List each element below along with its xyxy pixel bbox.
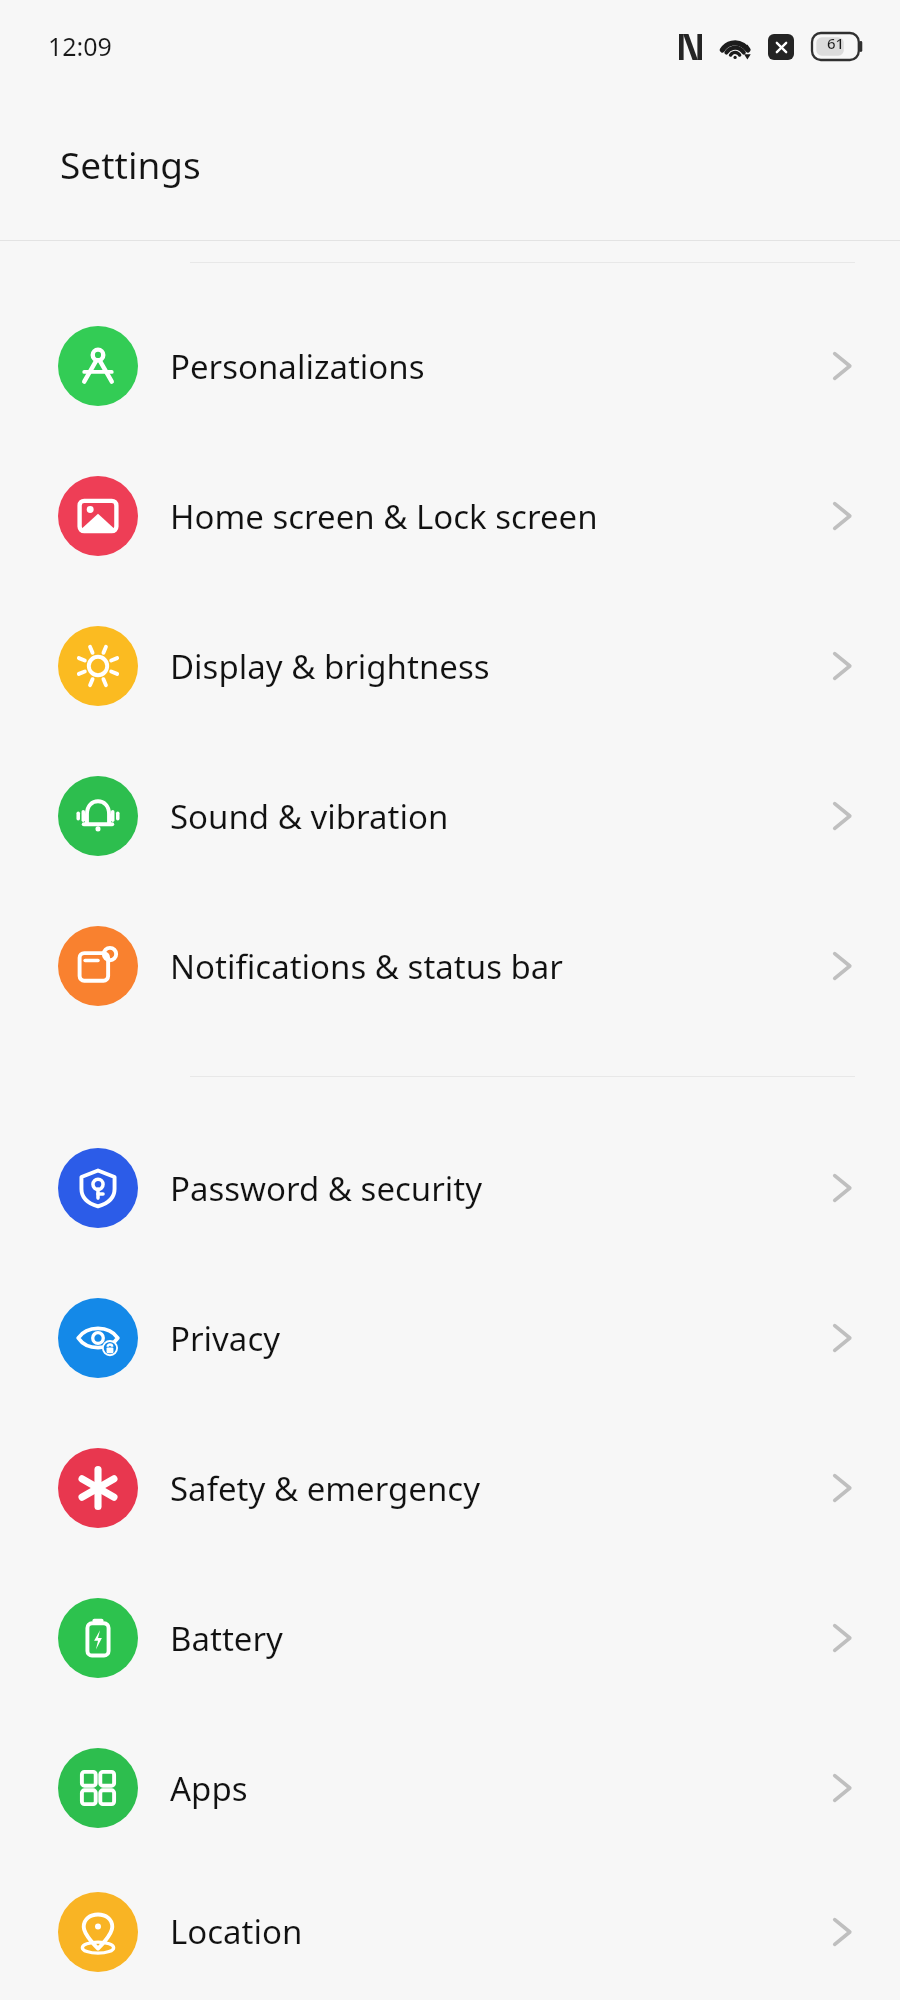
staticText: 12:09 [48, 29, 112, 63]
staticText: Apps [170, 1766, 248, 1811]
staticText: Display & brightness [170, 644, 490, 689]
staticText: Home screen & Lock screen [170, 494, 598, 539]
staticText: Battery [170, 1616, 283, 1661]
staticText: Privacy [170, 1316, 281, 1361]
staticText: Sound & vibration [170, 794, 449, 839]
staticText: Settings [60, 139, 201, 189]
button[interactable]: Apps [0, 1713, 900, 1863]
staticText: Location [170, 1909, 303, 1954]
button[interactable]: Personalizations [0, 291, 900, 441]
staticText: Notifications & status bar [170, 944, 563, 989]
button[interactable]: Sound & vibration [0, 741, 900, 891]
staticText: Safety & emergency [170, 1466, 481, 1511]
staticText: 61 [812, 33, 859, 60]
staticText: Personalizations [170, 344, 425, 389]
button[interactable]: Notifications & status bar [0, 891, 900, 1041]
button[interactable]: Home screen & Lock screen [0, 441, 900, 591]
button[interactable]: Location [0, 1863, 900, 2000]
button[interactable]: Safety & emergency [0, 1413, 900, 1563]
button[interactable]: Battery [0, 1563, 900, 1713]
button[interactable]: Display & brightness [0, 591, 900, 741]
button[interactable]: Password & security [0, 1113, 900, 1263]
button[interactable]: Privacy [0, 1263, 900, 1413]
staticText: Password & security [170, 1166, 483, 1211]
